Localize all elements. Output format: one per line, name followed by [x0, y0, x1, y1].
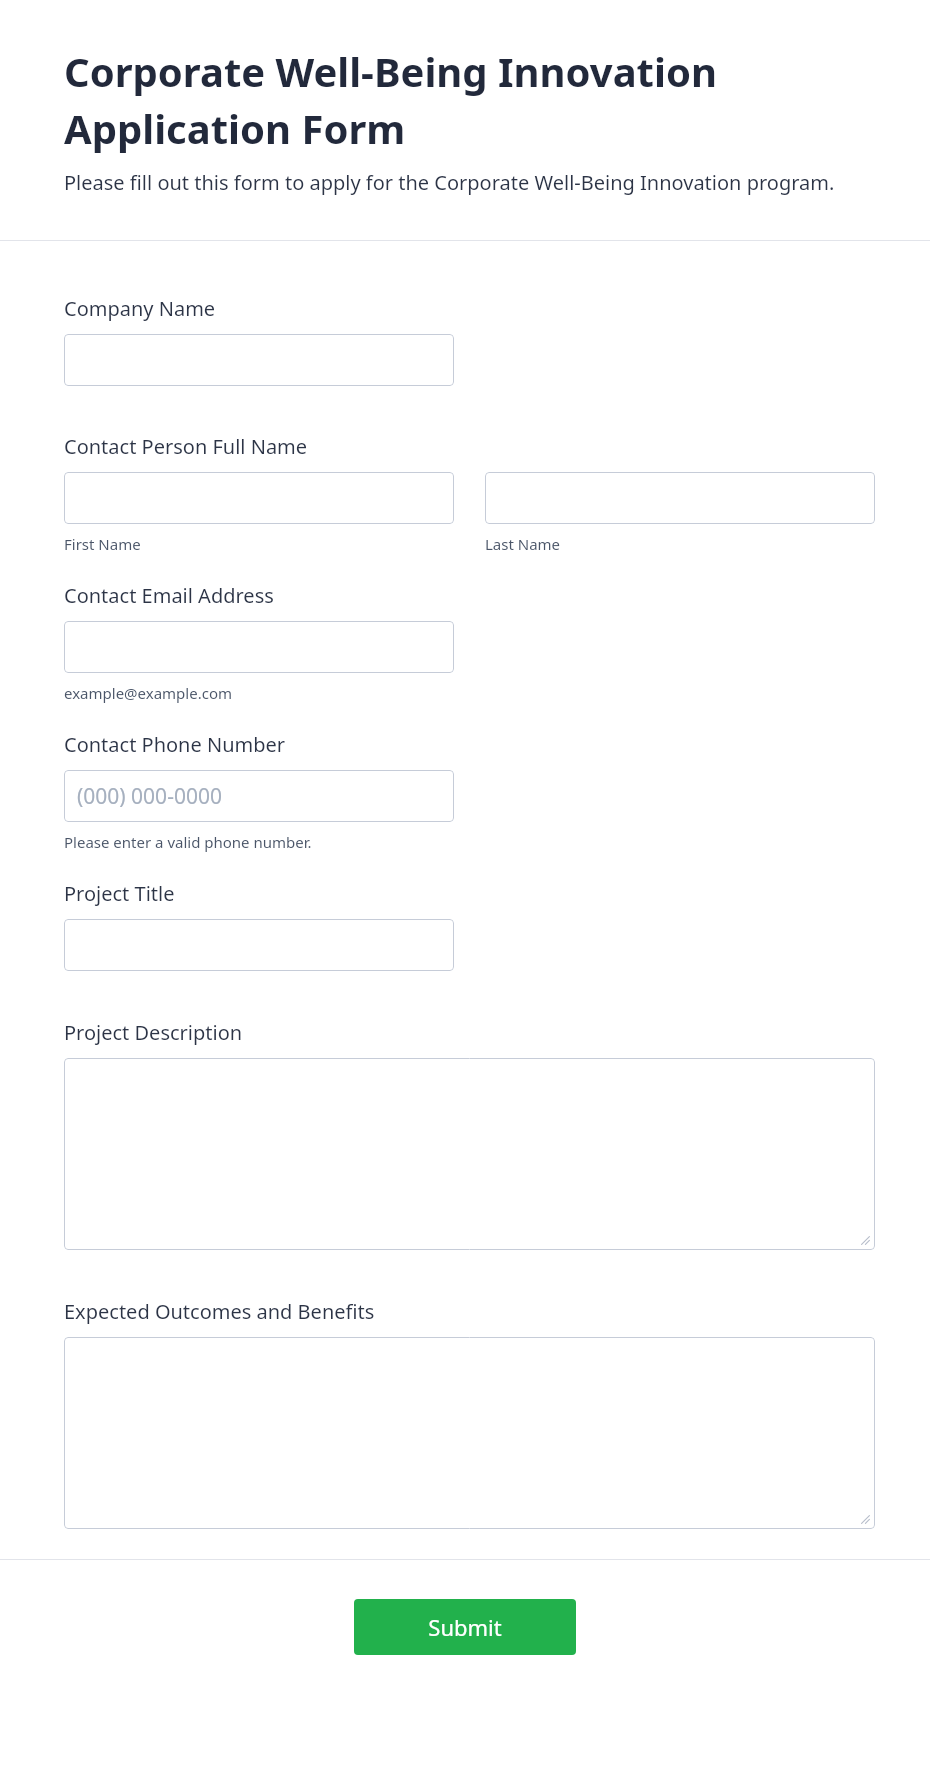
- staticText: Submit: [428, 1612, 502, 1642]
- button[interactable]: [64, 621, 454, 673]
- staticText: Contact Phone Number: [64, 731, 286, 758]
- staticText: Company Name: [64, 295, 216, 322]
- button[interactable]: [485, 472, 875, 524]
- button[interactable]: [64, 472, 454, 524]
- button[interactable]: [64, 919, 454, 971]
- button[interactable]: Submit: [354, 1599, 576, 1655]
- staticText: (000) 000-0000: [77, 782, 222, 811]
- staticText: Corporate Well-Being Innovation Applicat…: [64, 44, 717, 155]
- staticText: First Name: [64, 534, 141, 554]
- staticText: Expected Outcomes and Benefits: [64, 1298, 375, 1325]
- staticText: Last Name: [485, 534, 561, 554]
- staticText: Please enter a valid phone number.: [64, 832, 312, 852]
- button[interactable]: [64, 334, 454, 386]
- staticText: Project Title: [64, 880, 175, 907]
- staticText: example@example.com: [64, 683, 232, 703]
- staticText: Please fill out this form to apply for t…: [64, 169, 835, 196]
- button[interactable]: [64, 1058, 875, 1250]
- staticText: Contact Email Address: [64, 582, 274, 609]
- button[interactable]: [64, 1337, 875, 1529]
- staticText: Project Description: [64, 1019, 243, 1046]
- staticText: Contact Person Full Name: [64, 433, 308, 460]
- button[interactable]: (000) 000-0000: [64, 770, 454, 822]
